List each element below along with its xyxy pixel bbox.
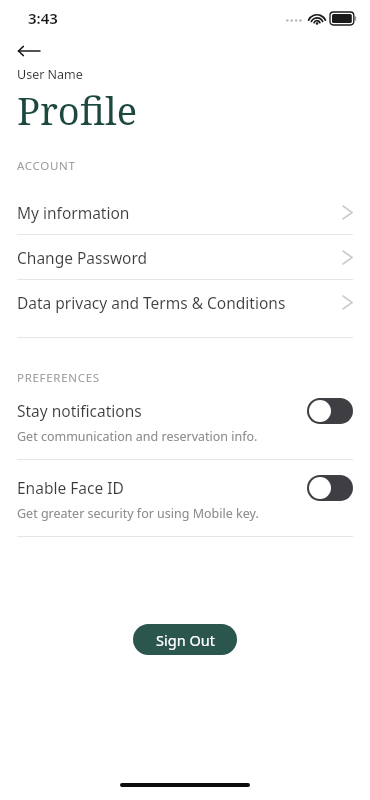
- button[interactable]: Data privacy and Terms & Conditions: [0, 280, 370, 324]
- staticText: Get communication and reservation info.: [17, 428, 258, 445]
- button[interactable]: Toggle: [307, 475, 353, 501]
- staticText: ACCOUNT: [17, 158, 76, 174]
- button[interactable]: Enable Face ID: [0, 477, 370, 522]
- staticText: Change Password: [17, 247, 342, 268]
- button[interactable]: Back: [12, 37, 46, 65]
- button[interactable]: Toggle: [307, 398, 353, 424]
- staticText: Stay notifications: [17, 400, 142, 421]
- staticText: PREFERENCES: [17, 370, 100, 386]
- staticText: Sign Out: [156, 630, 215, 650]
- staticText: My information: [17, 202, 342, 223]
- staticText: 3:43: [28, 8, 58, 28]
- button[interactable]: Sign Out: [133, 624, 237, 655]
- staticText: Profile: [17, 84, 138, 136]
- button[interactable]: Change Password: [0, 235, 370, 279]
- staticText: Get greater security for using Mobile ke…: [17, 505, 259, 522]
- staticText: Enable Face ID: [17, 477, 124, 498]
- button[interactable]: Stay notifications: [0, 400, 370, 445]
- button[interactable]: My information: [0, 190, 370, 234]
- staticText: Data privacy and Terms & Conditions: [17, 292, 342, 313]
- staticText: User Name: [17, 66, 83, 83]
